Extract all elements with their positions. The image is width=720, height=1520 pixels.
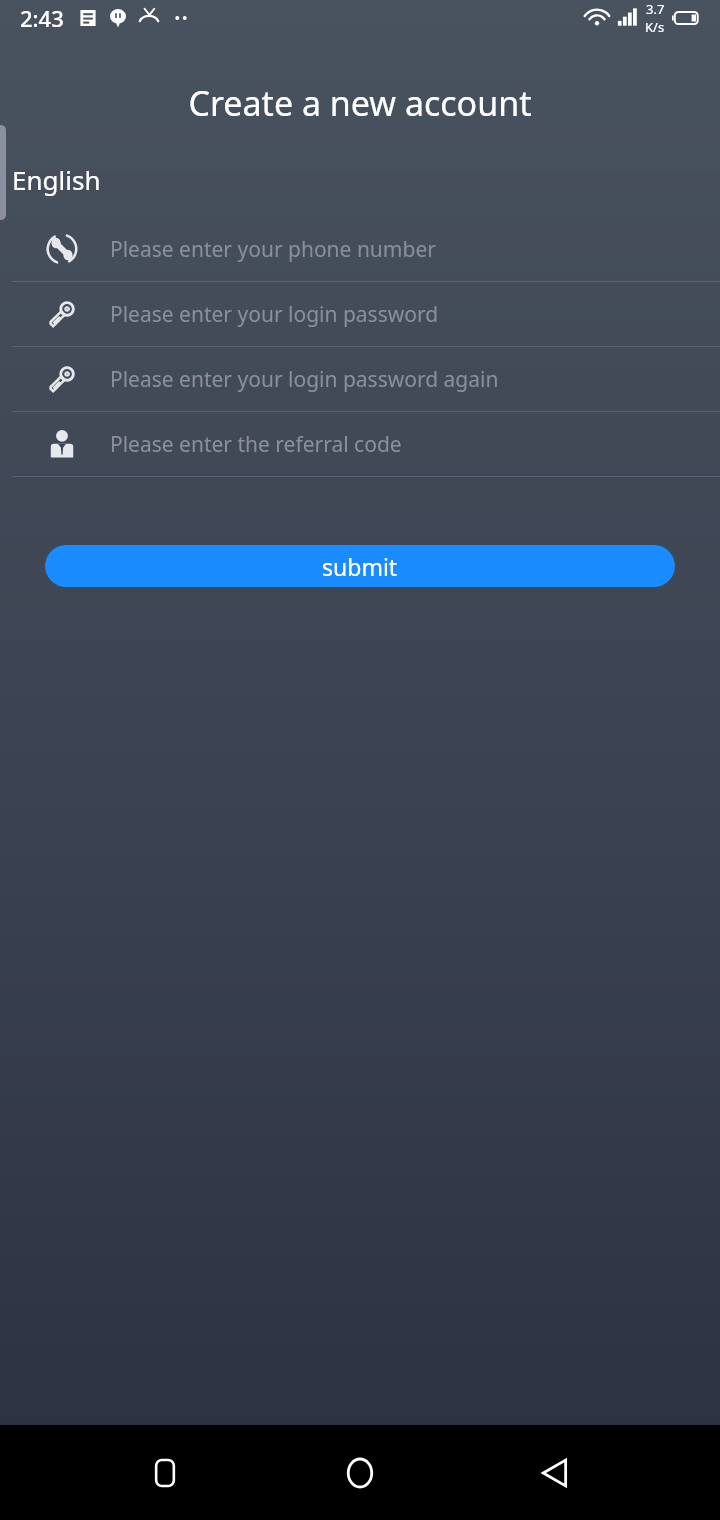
staticText: 2:43 [20, 3, 64, 33]
button[interactable]: Recents [135, 1443, 195, 1503]
staticText: Please enter your phone number [110, 235, 436, 264]
staticText: 3.7 [646, 0, 665, 18]
staticText: Create a new account [0, 80, 720, 126]
button[interactable]: Home [330, 1443, 390, 1503]
staticText: Please enter your login password [110, 300, 439, 329]
staticText: submit [322, 551, 398, 582]
button[interactable]: submit [45, 545, 675, 587]
other: Referral code [45, 427, 79, 461]
staticText: Please enter your login password again [110, 365, 499, 394]
staticText: K/s [645, 18, 665, 36]
button[interactable]: Phone [0, 217, 720, 281]
button[interactable]: English [0, 160, 113, 199]
other: Password [45, 362, 79, 396]
staticText: Please enter the referral code [110, 430, 402, 459]
button[interactable]: Referral code [0, 412, 720, 476]
button[interactable]: Password [0, 347, 720, 411]
other: Phone [45, 232, 79, 266]
other: Password [45, 297, 79, 331]
button[interactable]: Password [0, 282, 720, 346]
button[interactable]: Back [525, 1443, 585, 1503]
